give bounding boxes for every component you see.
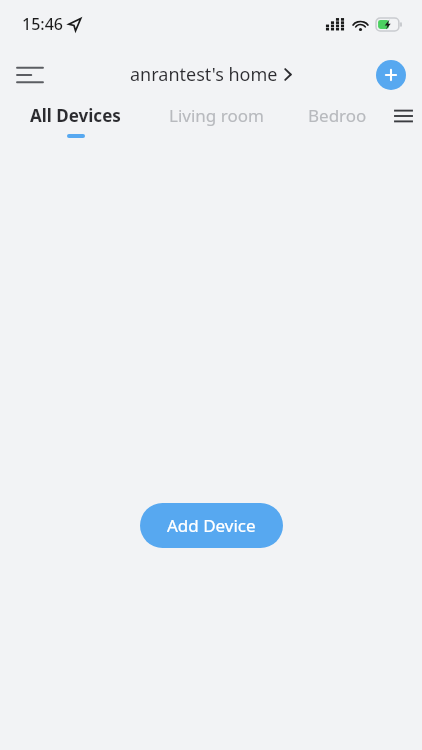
button[interactable]: Menu	[8, 53, 52, 97]
staticText: Living room	[169, 104, 264, 127]
button[interactable]: All Devices	[28, 104, 123, 138]
button[interactable]: All rooms	[384, 97, 422, 135]
button[interactable]: Add Device	[140, 503, 283, 548]
button[interactable]: Living room	[167, 104, 266, 127]
button[interactable]: Add	[376, 60, 406, 90]
staticText: Bedroom	[308, 104, 380, 127]
button[interactable]: anrantest's home	[122, 56, 300, 93]
staticText: anrantest's home	[130, 62, 278, 87]
staticText: All Devices	[30, 104, 121, 127]
staticText: Add Device	[167, 514, 256, 537]
staticText: 15:46	[22, 13, 63, 35]
button[interactable]: Bedroom	[308, 104, 380, 127]
